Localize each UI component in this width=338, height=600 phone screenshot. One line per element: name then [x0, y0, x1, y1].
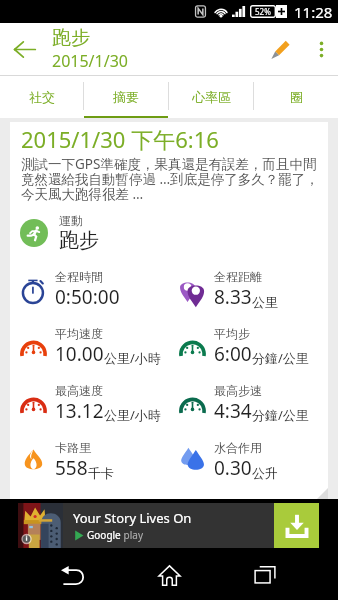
- staticText: 運動: [59, 213, 83, 228]
- staticText: 11:28: [294, 2, 333, 22]
- button[interactable]: 最高速度: [19, 375, 169, 432]
- button[interactable]: Back: [50, 552, 96, 598]
- staticText: 跑步: [52, 26, 90, 50]
- staticText: 平均速度: [55, 326, 103, 341]
- staticText: 全程時間: [55, 269, 103, 284]
- button[interactable]: More options: [304, 23, 338, 75]
- staticText: 4:34: [214, 398, 252, 424]
- staticText: 測試一下GPS準確度，果真還是有誤差，而且中間竟然還給我自動暫停過 …到底是停了…: [21, 155, 319, 203]
- staticText: 8.33: [214, 284, 252, 310]
- staticText: Google: [87, 528, 121, 542]
- staticText: 心率區: [192, 89, 231, 105]
- staticText: 10.00: [55, 341, 104, 367]
- staticText: 分鐘/公里: [252, 406, 309, 424]
- staticText: 社交: [29, 89, 55, 105]
- staticText: 0.30: [214, 455, 252, 481]
- button[interactable]: Home: [146, 552, 192, 598]
- staticText: 卡路里: [55, 440, 91, 455]
- button[interactable]: Back: [0, 23, 48, 75]
- staticText: 52%: [255, 6, 271, 17]
- staticText: 0:50:00: [55, 284, 120, 310]
- button[interactable]: 卡路里: [19, 432, 169, 489]
- staticText: 圈: [290, 89, 303, 105]
- button[interactable]: 圈: [254, 76, 338, 118]
- staticText: 平均步: [214, 326, 250, 341]
- button[interactable]: 平均速度: [19, 318, 169, 375]
- staticText: 2015/1/30: [52, 50, 128, 72]
- staticText: 全程距離: [214, 269, 262, 284]
- staticText: 13.12: [55, 398, 104, 424]
- staticText: 跑步: [59, 228, 99, 253]
- button[interactable]: 心率區: [169, 76, 253, 118]
- button[interactable]: 運動: [20, 213, 99, 253]
- staticText: 公里: [252, 294, 278, 310]
- staticText: 公里/小時: [104, 349, 161, 367]
- staticText: 2015/1/30 下午6:16: [21, 124, 219, 154]
- staticText: 水合作用: [214, 440, 262, 455]
- staticText: 558: [55, 455, 88, 481]
- staticText: 千卡: [88, 465, 114, 481]
- staticText: play: [121, 528, 144, 542]
- staticText: 6:00: [214, 341, 252, 367]
- staticText: 公里/小時: [104, 406, 161, 424]
- button[interactable]: 摘要: [84, 76, 168, 118]
- staticText: 最高速度: [55, 383, 103, 398]
- button[interactable]: Your Story Lives On: [18, 503, 319, 548]
- button[interactable]: 最高步速: [178, 375, 328, 432]
- button[interactable]: 平均步: [178, 318, 328, 375]
- button[interactable]: Edit: [256, 23, 304, 75]
- staticText: 摘要: [113, 89, 139, 105]
- button[interactable]: Download: [274, 503, 319, 548]
- staticText: 公升: [252, 465, 278, 481]
- staticText: 分鐘/公里: [252, 349, 309, 367]
- staticText: 最高步速: [214, 383, 262, 398]
- button[interactable]: 全程距離: [178, 261, 328, 318]
- button[interactable]: 社交: [0, 76, 83, 118]
- staticText: Your Story Lives On: [73, 509, 192, 527]
- button[interactable]: 全程時間: [19, 261, 169, 318]
- button[interactable]: Recent apps: [242, 552, 288, 598]
- button[interactable]: 水合作用: [178, 432, 328, 489]
